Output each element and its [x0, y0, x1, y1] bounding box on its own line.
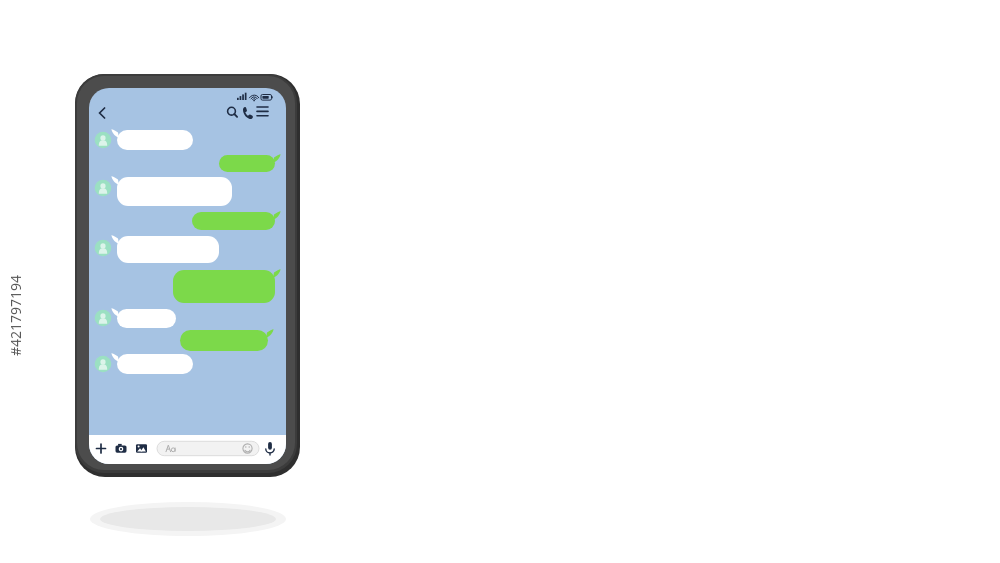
button[interactable]: Add attachment	[94, 440, 111, 458]
button[interactable]: Camera	[113, 440, 130, 458]
button[interactable]: Call	[242, 103, 258, 121]
button[interactable]: Voice message	[263, 440, 278, 458]
button[interactable]: Menu	[255, 103, 271, 121]
button[interactable]: Gallery	[134, 440, 151, 458]
button[interactable]: Emoji	[242, 441, 254, 456]
button[interactable]: Message input	[157, 441, 259, 456]
button[interactable]: Back	[93, 103, 113, 123]
button[interactable]: Search	[224, 103, 242, 121]
staticText: #421797194	[5, 274, 24, 356]
